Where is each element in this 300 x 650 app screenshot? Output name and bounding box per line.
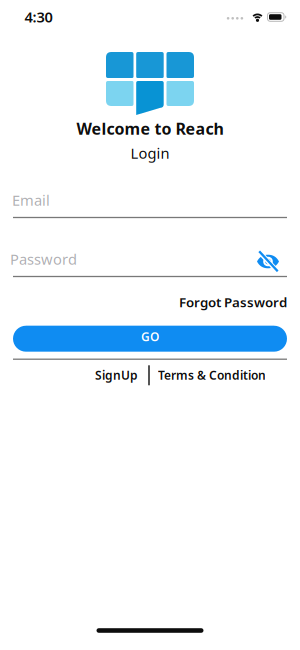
button[interactable]: Forgot Password [179, 293, 287, 311]
staticText: GO [141, 329, 159, 345]
button[interactable]: Email [0, 191, 300, 221]
button[interactable]: Terms & Condition [158, 367, 266, 383]
staticText: Terms & Condition [158, 367, 266, 383]
staticText: Password [10, 249, 77, 269]
staticText: Login [130, 143, 169, 163]
staticText: Email [12, 190, 50, 210]
button[interactable]: GO [13, 326, 287, 352]
button[interactable]: SignUp [95, 367, 138, 383]
staticText: SignUp [95, 367, 138, 383]
staticText: 4:30 [24, 7, 52, 27]
button[interactable]: Password [0, 250, 300, 280]
staticText: Forgot Password [179, 293, 287, 311]
staticText: Welcome to Reach [76, 118, 223, 139]
button[interactable]: Show password [256, 250, 280, 272]
